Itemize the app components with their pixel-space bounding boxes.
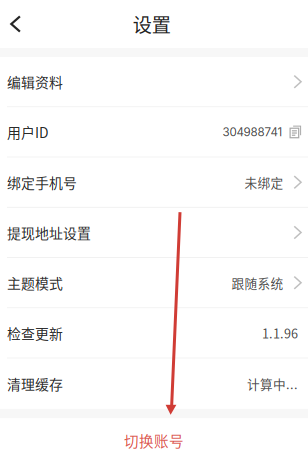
button[interactable]: 切换账号: [0, 418, 308, 462]
button[interactable]: Back: [0, 0, 35, 48]
staticText: 用户ID: [7, 122, 49, 142]
staticText: 提现地址设置: [7, 222, 91, 242]
staticText: 绑定手机号: [7, 172, 77, 192]
staticText: 304988741: [222, 125, 282, 139]
button[interactable]: 检查更新: [0, 308, 308, 359]
staticText: 编辑资料: [7, 72, 63, 92]
staticText: 未绑定: [244, 173, 283, 191]
button[interactable]: 主题模式: [0, 258, 308, 308]
button[interactable]: 绑定手机号: [0, 158, 308, 208]
staticText: 1.1.96: [262, 324, 298, 342]
staticText: 跟随系统: [231, 274, 283, 292]
staticText: 主题模式: [7, 273, 63, 293]
button[interactable]: 清理缓存: [0, 359, 308, 409]
staticText: 设置: [133, 10, 171, 38]
button[interactable]: 用户ID: [0, 107, 308, 157]
button[interactable]: 提现地址设置: [0, 208, 308, 258]
staticText: 计算中...: [247, 375, 298, 393]
staticText: 检查更新: [7, 323, 63, 343]
staticText: 切换账号: [124, 430, 184, 451]
button[interactable]: 编辑资料: [0, 57, 308, 107]
staticText: 清理缓存: [7, 374, 63, 394]
